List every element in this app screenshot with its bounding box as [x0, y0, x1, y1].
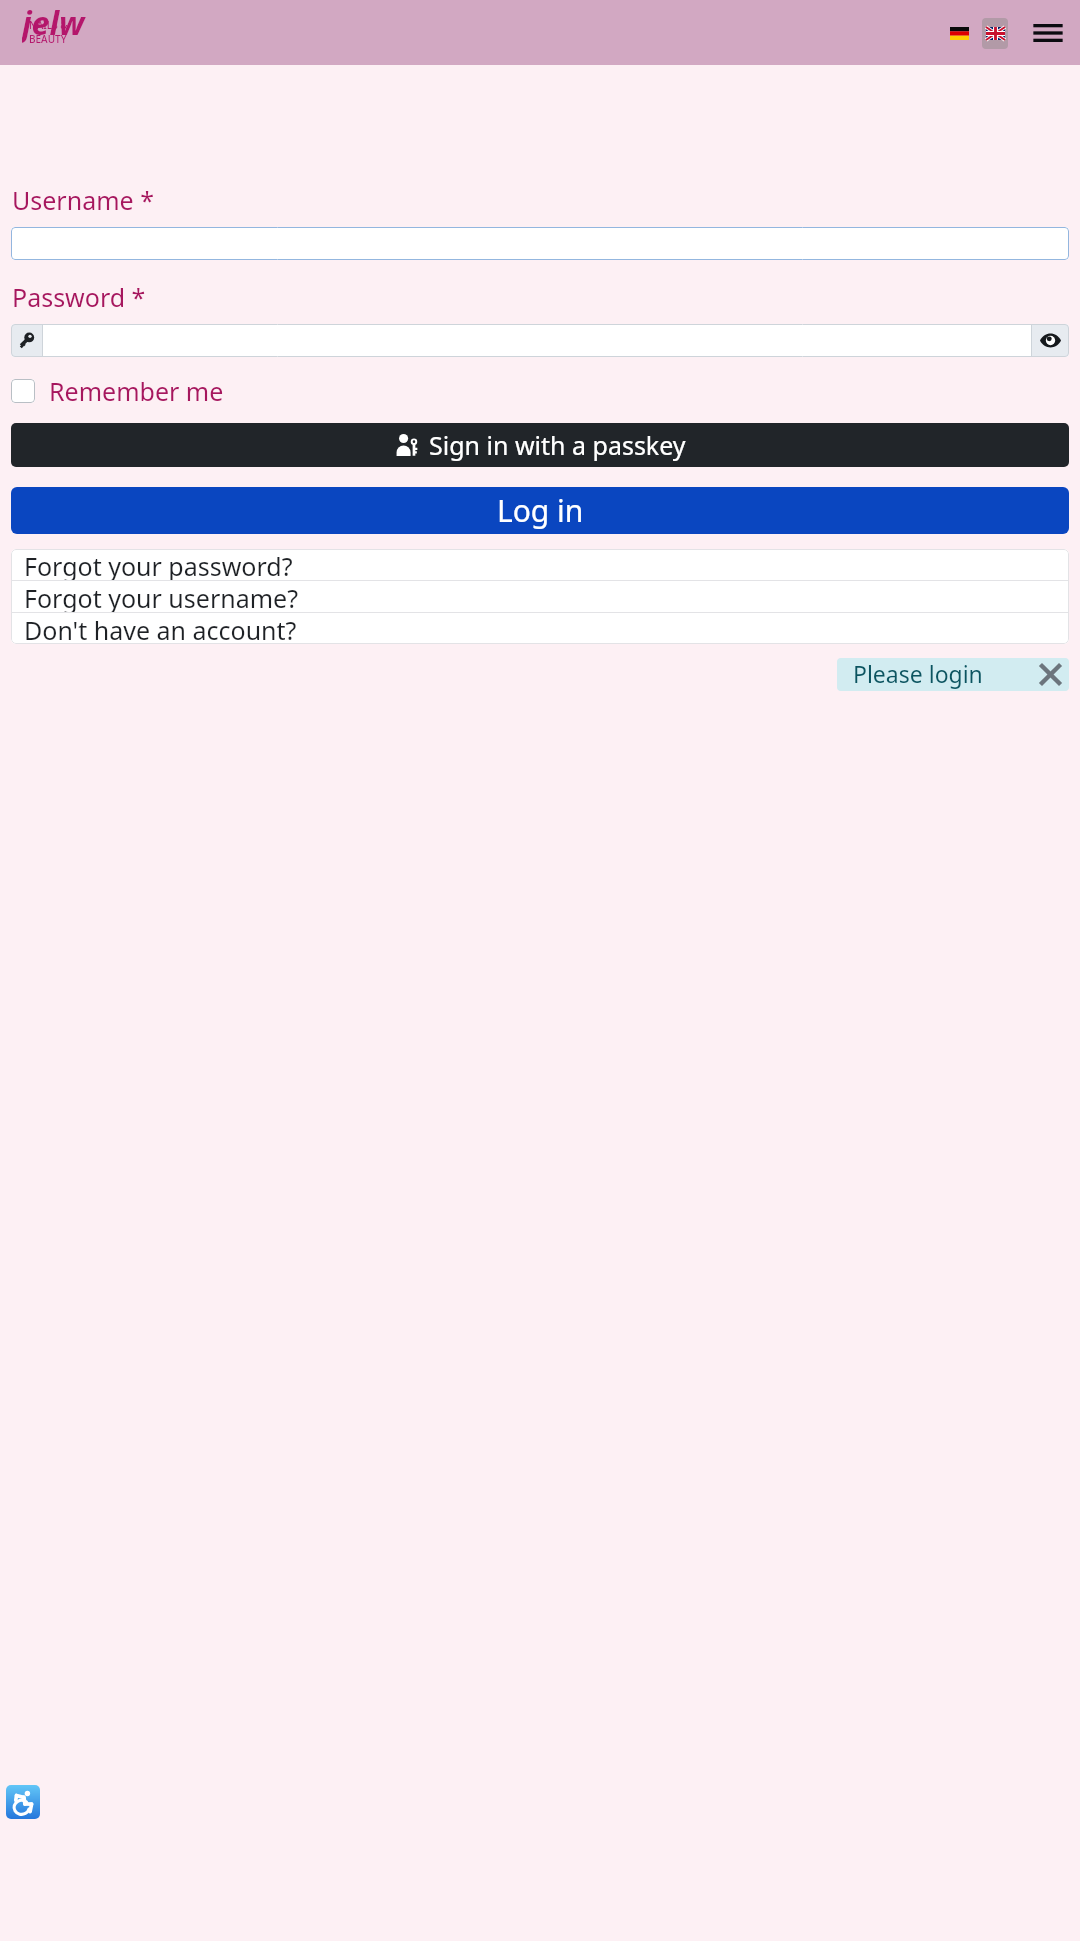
staticText: Remember me: [49, 374, 224, 408]
staticText: jelwana: [22, 1, 98, 47]
button[interactable]: English: [982, 18, 1008, 49]
button[interactable]: Show password: [1032, 324, 1069, 357]
staticText: Username *: [12, 183, 154, 217]
button[interactable]: [43, 324, 1031, 357]
staticText: Log in: [497, 490, 584, 531]
button[interactable]: Sign in with a passkey: [11, 423, 1069, 467]
staticText: NAILS & BEAUTY: [29, 18, 105, 46]
staticText: Please login first: [853, 658, 1031, 691]
button[interactable]: Forgot your password?: [11, 549, 1069, 580]
staticText: Forgot your password?: [24, 549, 293, 580]
button[interactable]: Close: [1031, 658, 1069, 691]
staticText: Forgot your username?: [24, 581, 299, 612]
button[interactable]: [11, 227, 1069, 260]
button[interactable]: Log in: [11, 487, 1069, 534]
staticText: Password *: [12, 280, 146, 314]
button[interactable]: Menu: [1029, 14, 1067, 52]
button[interactable]: Don't have an account?: [11, 613, 1069, 644]
button[interactable]: Forgot your username?: [11, 581, 1069, 612]
button[interactable]: Remember me: [11, 374, 224, 408]
button[interactable]: Deutsch: [944, 18, 974, 48]
button[interactable]: Accessibility options: [6, 1785, 40, 1819]
staticText: Don't have an account?: [24, 613, 297, 644]
staticText: Sign in with a passkey: [429, 428, 686, 462]
